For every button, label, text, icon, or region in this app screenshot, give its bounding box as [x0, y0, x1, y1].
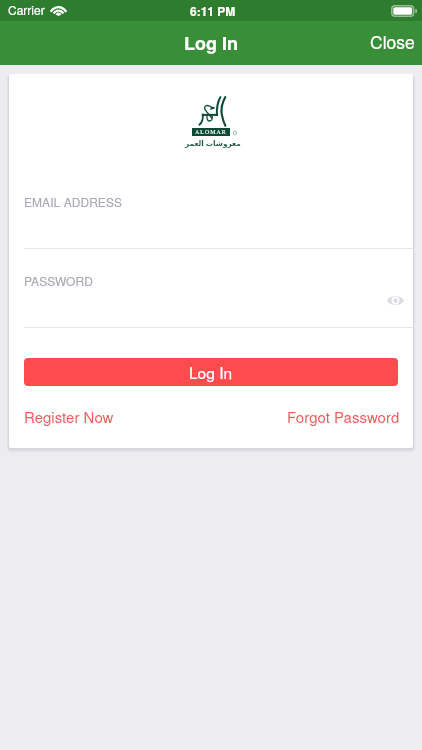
staticText: Close: [370, 29, 415, 51]
staticText: Forgot Password: [287, 406, 400, 427]
staticText: ALOMAR: [195, 128, 227, 136]
button[interactable]: Close: [356, 21, 422, 65]
staticText: Register Now: [24, 406, 114, 427]
staticText: Log In: [189, 361, 233, 383]
staticText: 6:11 PM: [190, 2, 236, 19]
staticText: معروشات العمر: [185, 138, 241, 148]
button[interactable]: Log In: [24, 358, 398, 386]
button[interactable]: Register Now: [9, 402, 122, 431]
staticText: PASSWORD: [24, 272, 93, 289]
button[interactable]: Forgot Password: [279, 402, 413, 431]
staticText: Carrier: [8, 1, 45, 18]
staticText: Log In: [184, 30, 238, 56]
button[interactable]: Show password: [381, 286, 409, 314]
staticText: EMAIL ADDRESS: [24, 193, 123, 210]
